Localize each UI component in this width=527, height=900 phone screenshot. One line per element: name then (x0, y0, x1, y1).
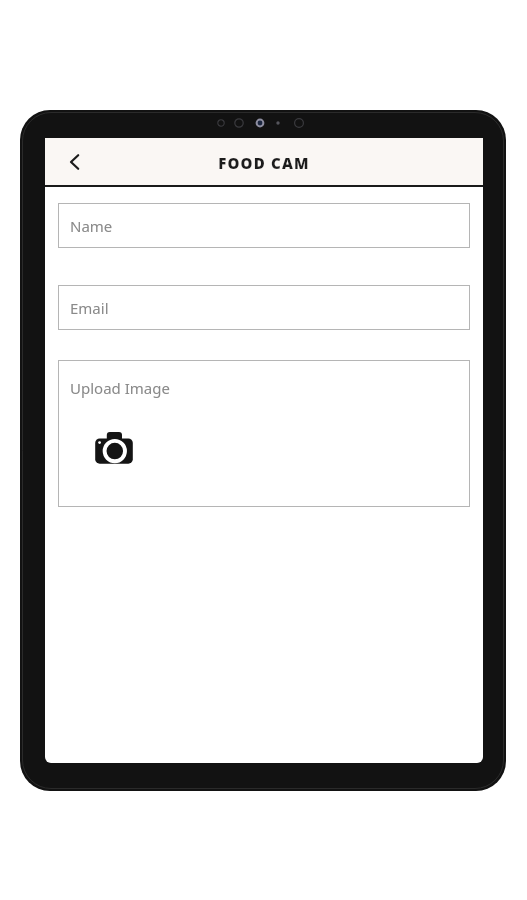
staticText: Name (70, 216, 113, 236)
button[interactable]: Upload Image (58, 360, 470, 507)
button[interactable]: Take photo (93, 430, 135, 466)
staticText: FOOD CAM (45, 153, 483, 201)
button[interactable]: Email (58, 285, 470, 330)
staticText: Email (70, 298, 109, 318)
staticText: Upload Image (70, 378, 170, 398)
button[interactable]: Name (58, 203, 470, 248)
button[interactable]: Back (57, 144, 93, 180)
